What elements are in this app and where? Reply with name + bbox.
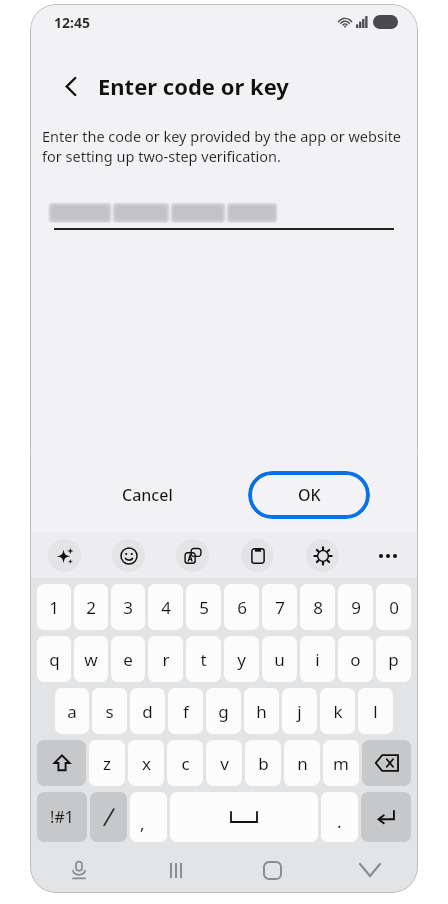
button[interactable]: 3 [111,584,145,630]
button[interactable]: a [55,688,89,734]
button[interactable]: Voice input [30,847,127,893]
button[interactable]: y [224,636,259,682]
staticText: 9 [351,596,361,619]
staticText: 3 [123,596,133,619]
button[interactable]: AI suggestions [48,539,81,572]
button[interactable]: u [262,636,297,682]
button[interactable]: m [323,740,359,786]
staticText: 6 [237,596,247,619]
staticText: a [67,700,77,723]
staticText: !#1 [50,806,74,828]
staticText: g [218,700,229,723]
button[interactable]: . [321,792,358,842]
button[interactable]: s [92,688,127,734]
staticText: OK [298,484,321,506]
staticText: v [220,752,229,775]
staticText: c [181,752,190,775]
button[interactable]: c [167,740,203,786]
staticText: 2 [86,596,96,619]
staticText: x [142,752,151,775]
button[interactable]: 8 [300,584,335,630]
button[interactable]: t [186,636,221,682]
staticText: n [297,752,308,775]
button[interactable]: r [148,636,183,682]
button[interactable]: OK [248,471,370,519]
button[interactable]: 0 [376,584,411,630]
staticText: j [297,700,302,723]
staticText: . [337,810,342,833]
staticText: 5 [199,596,209,619]
button[interactable]: !#1 [37,792,87,842]
staticText: o [350,648,361,671]
staticText: y [237,648,246,671]
button[interactable]: Change language [90,792,127,842]
button[interactable]: Back [54,69,88,103]
staticText: s [105,700,114,723]
staticText: 8 [313,596,323,619]
button[interactable]: 6 [224,584,259,630]
button[interactable]: 5 [186,584,221,630]
button[interactable]: g [206,688,241,734]
button[interactable]: Hide keyboard [321,847,418,893]
button[interactable]: q [37,636,71,682]
button[interactable]: Shift [37,740,86,786]
button[interactable]: Clipboard [241,539,274,572]
button[interactable]: Emoji [112,539,145,572]
button[interactable]: l [358,688,393,734]
button[interactable]: k [320,688,355,734]
button[interactable]: i [300,636,335,682]
button[interactable]: Backspace [362,740,411,786]
button[interactable]: Enter [361,792,411,842]
button[interactable]: Space [170,792,318,842]
staticText: q [49,648,60,671]
staticText: r [162,648,170,671]
button[interactable]: b [245,740,281,786]
staticText: k [333,700,343,723]
button[interactable]: z [89,740,125,786]
staticText: Enter code or key [98,71,289,101]
button[interactable]: 4 [148,584,183,630]
staticText: 12:45 [54,13,90,32]
staticText: 7 [275,596,285,619]
staticText: t [200,648,207,671]
staticText: i [315,648,320,671]
button[interactable]: n [284,740,320,786]
button[interactable]: o [338,636,373,682]
button[interactable]: Recent apps [127,847,224,893]
staticText: l [373,700,378,723]
staticText: w [84,648,98,671]
staticText: Enter the code or key provided by the ap… [42,126,406,167]
button[interactable]: 9 [338,584,373,630]
button[interactable]: x [128,740,164,786]
button[interactable]: 7 [262,584,297,630]
button[interactable]: d [130,688,165,734]
staticText: h [256,700,267,723]
staticText: d [142,700,153,723]
button[interactable]: Keyboard settings [306,539,339,572]
staticText: f [183,700,189,723]
button[interactable]: More options [371,539,404,572]
staticText: p [388,648,399,671]
staticText: m [333,752,349,775]
button[interactable]: v [206,740,242,786]
staticText: Cancel [122,484,173,506]
button[interactable]: h [244,688,279,734]
button[interactable]: e [111,636,145,682]
button[interactable]: j [282,688,317,734]
button[interactable]: 2 [74,584,108,630]
button[interactable]: , [130,792,167,842]
staticText: , [140,812,145,835]
staticText: u [274,648,285,671]
staticText: b [258,752,269,775]
button[interactable]: Cancel [104,474,191,516]
button[interactable]: 1 [37,584,71,630]
staticText: z [103,752,111,775]
staticText: 1 [49,596,59,619]
button[interactable]: Home [224,847,321,893]
button[interactable]: Translate [176,539,209,572]
button[interactable]: p [376,636,411,682]
button[interactable]: f [168,688,203,734]
button[interactable]: w [74,636,108,682]
staticText: 4 [161,596,171,619]
staticText: e [123,648,133,671]
